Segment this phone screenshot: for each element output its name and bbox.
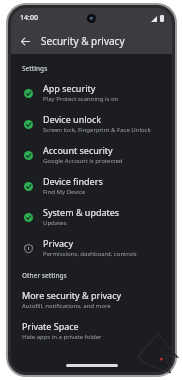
button[interactable]: App security <box>11 77 172 108</box>
staticText: Play Protect scanning is on <box>43 95 119 103</box>
button[interactable]: Back <box>15 31 35 51</box>
staticText: Device unlock <box>43 113 102 125</box>
button[interactable]: Private Space <box>11 315 172 346</box>
staticText: Hide apps in a private folder <box>22 333 102 341</box>
staticText: Google Account is protected <box>43 157 123 165</box>
staticText: Other settings <box>22 271 67 280</box>
staticText: Account security <box>43 144 113 156</box>
staticText: Autofill, notifications, and more <box>22 302 111 310</box>
staticText: Settings <box>22 64 48 73</box>
staticText: Security & privacy <box>41 34 125 48</box>
staticText: Private Space <box>22 320 79 332</box>
button[interactable]: Device unlock <box>11 108 172 139</box>
staticText: Privacy <box>43 237 74 249</box>
button[interactable]: Device finders <box>11 170 172 201</box>
staticText: More security & privacy <box>22 289 122 301</box>
staticText: System & updates <box>43 206 120 218</box>
button[interactable]: Account security <box>11 139 172 170</box>
staticText: 14:00 <box>20 13 38 23</box>
staticText: App security <box>43 82 96 94</box>
button[interactable]: More security & privacy <box>11 284 172 315</box>
staticText: Updates <box>43 219 67 227</box>
button[interactable]: System & updates <box>11 201 172 232</box>
staticText: Device finders <box>43 175 103 187</box>
button[interactable]: Privacy <box>11 232 172 263</box>
staticText: Find My Device <box>43 188 86 196</box>
staticText: Screen lock, Fingerprint & Face Unlock <box>43 126 151 134</box>
staticText: Permissions, dashboard, controls <box>43 250 137 258</box>
